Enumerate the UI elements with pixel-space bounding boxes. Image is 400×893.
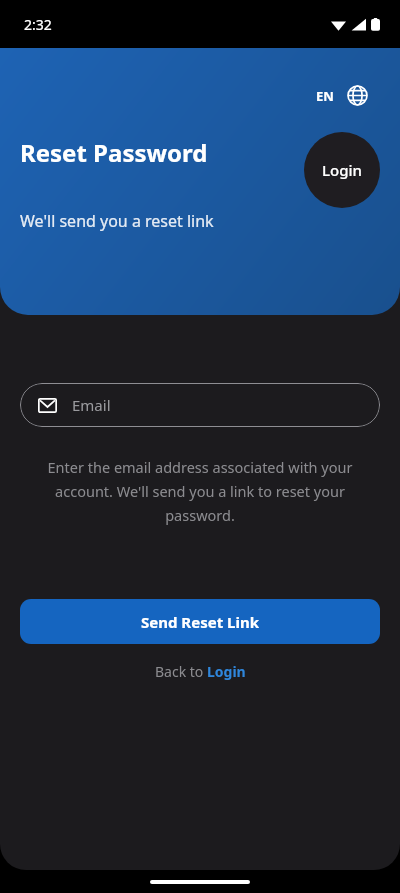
button[interactable]: Login: [304, 132, 380, 208]
other: Change language: [347, 85, 368, 106]
button[interactable]: Email: [20, 383, 380, 427]
staticText: Reset Password: [20, 136, 208, 169]
staticText: Enter the email address associated with …: [32, 457, 368, 525]
staticText: Login: [322, 160, 362, 180]
staticText: We'll send you a reset link: [20, 210, 214, 232]
staticText: Send Reset Link: [141, 612, 259, 632]
staticText: 2:32: [24, 15, 52, 34]
button[interactable]: Send Reset Link: [20, 599, 380, 644]
button[interactable]: EN: [312, 82, 372, 109]
staticText: EN: [316, 87, 334, 105]
staticText: Email: [72, 395, 111, 415]
button[interactable]: Back to Login: [147, 658, 254, 685]
other: Email: [38, 398, 57, 413]
